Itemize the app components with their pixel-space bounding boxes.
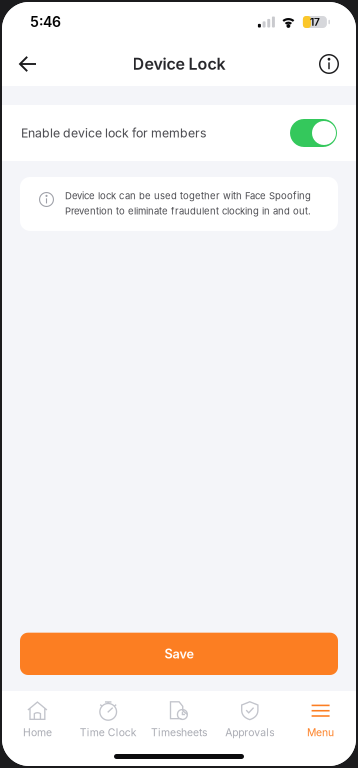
button[interactable]: Approvals xyxy=(214,690,285,746)
staticText: Time Clock xyxy=(80,726,137,739)
button[interactable]: Information xyxy=(307,42,356,86)
staticText: 17 xyxy=(310,16,320,28)
staticText: Enable device lock for members xyxy=(21,126,206,140)
button[interactable]: Time Clock xyxy=(73,690,144,746)
button[interactable]: Enable device lock for members xyxy=(2,105,356,161)
button[interactable]: Menu xyxy=(285,690,356,746)
staticText: Device Lock xyxy=(132,54,225,74)
staticText: 5:46 xyxy=(30,13,61,30)
staticText: Save xyxy=(164,646,193,661)
staticText: Approvals xyxy=(225,726,274,739)
staticText: Prevention to eliminate fraudulent clock… xyxy=(65,205,311,217)
button[interactable]: Timesheets xyxy=(144,690,214,746)
staticText: Menu xyxy=(307,726,334,739)
staticText: Timesheets xyxy=(151,726,207,739)
button[interactable]: Back xyxy=(2,42,50,86)
button[interactable]: Home xyxy=(2,690,73,746)
button[interactable]: Save xyxy=(2,633,356,675)
staticText: Home xyxy=(23,726,52,739)
staticText: Device lock can be used together with Fa… xyxy=(65,190,311,201)
